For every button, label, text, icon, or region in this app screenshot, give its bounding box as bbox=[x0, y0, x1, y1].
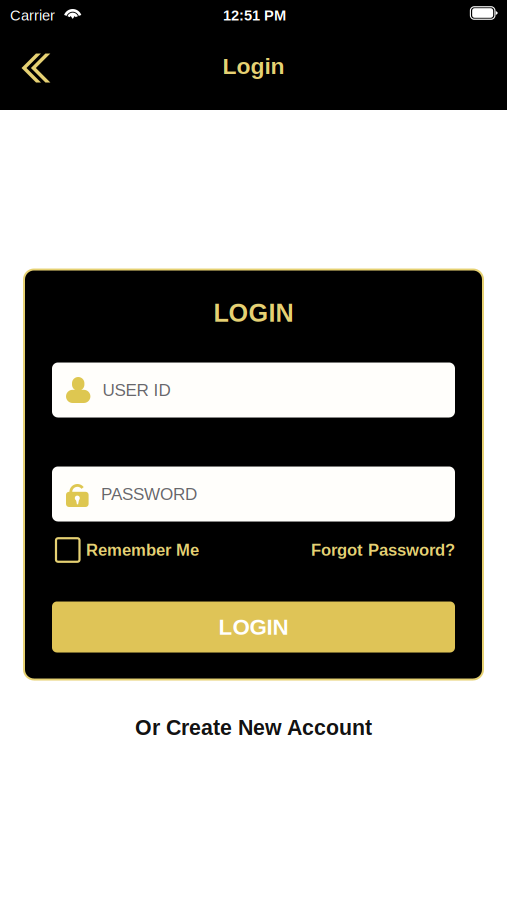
staticText: LOGIN bbox=[213, 299, 293, 327]
button[interactable]: PASSWORD bbox=[52, 466, 455, 521]
button[interactable]: Forgot Password? bbox=[311, 534, 455, 566]
button[interactable]: USER ID bbox=[52, 362, 455, 417]
staticText: Forgot Password? bbox=[311, 541, 455, 559]
staticText: 12:51 PM bbox=[223, 7, 286, 24]
staticText: PASSWORD bbox=[101, 484, 197, 504]
staticText: Login bbox=[222, 53, 284, 79]
button[interactable]: Remember Me bbox=[52, 534, 199, 566]
button[interactable]: Back bbox=[0, 32, 62, 110]
button[interactable]: Or Create New Account bbox=[135, 714, 372, 740]
staticText: Remember Me bbox=[86, 541, 199, 559]
staticText: Carrier bbox=[10, 7, 55, 24]
button[interactable]: LOGIN bbox=[52, 601, 455, 652]
staticText: Or Create New Account bbox=[135, 716, 372, 739]
staticText: USER ID bbox=[102, 380, 170, 400]
staticText: LOGIN bbox=[218, 614, 288, 639]
